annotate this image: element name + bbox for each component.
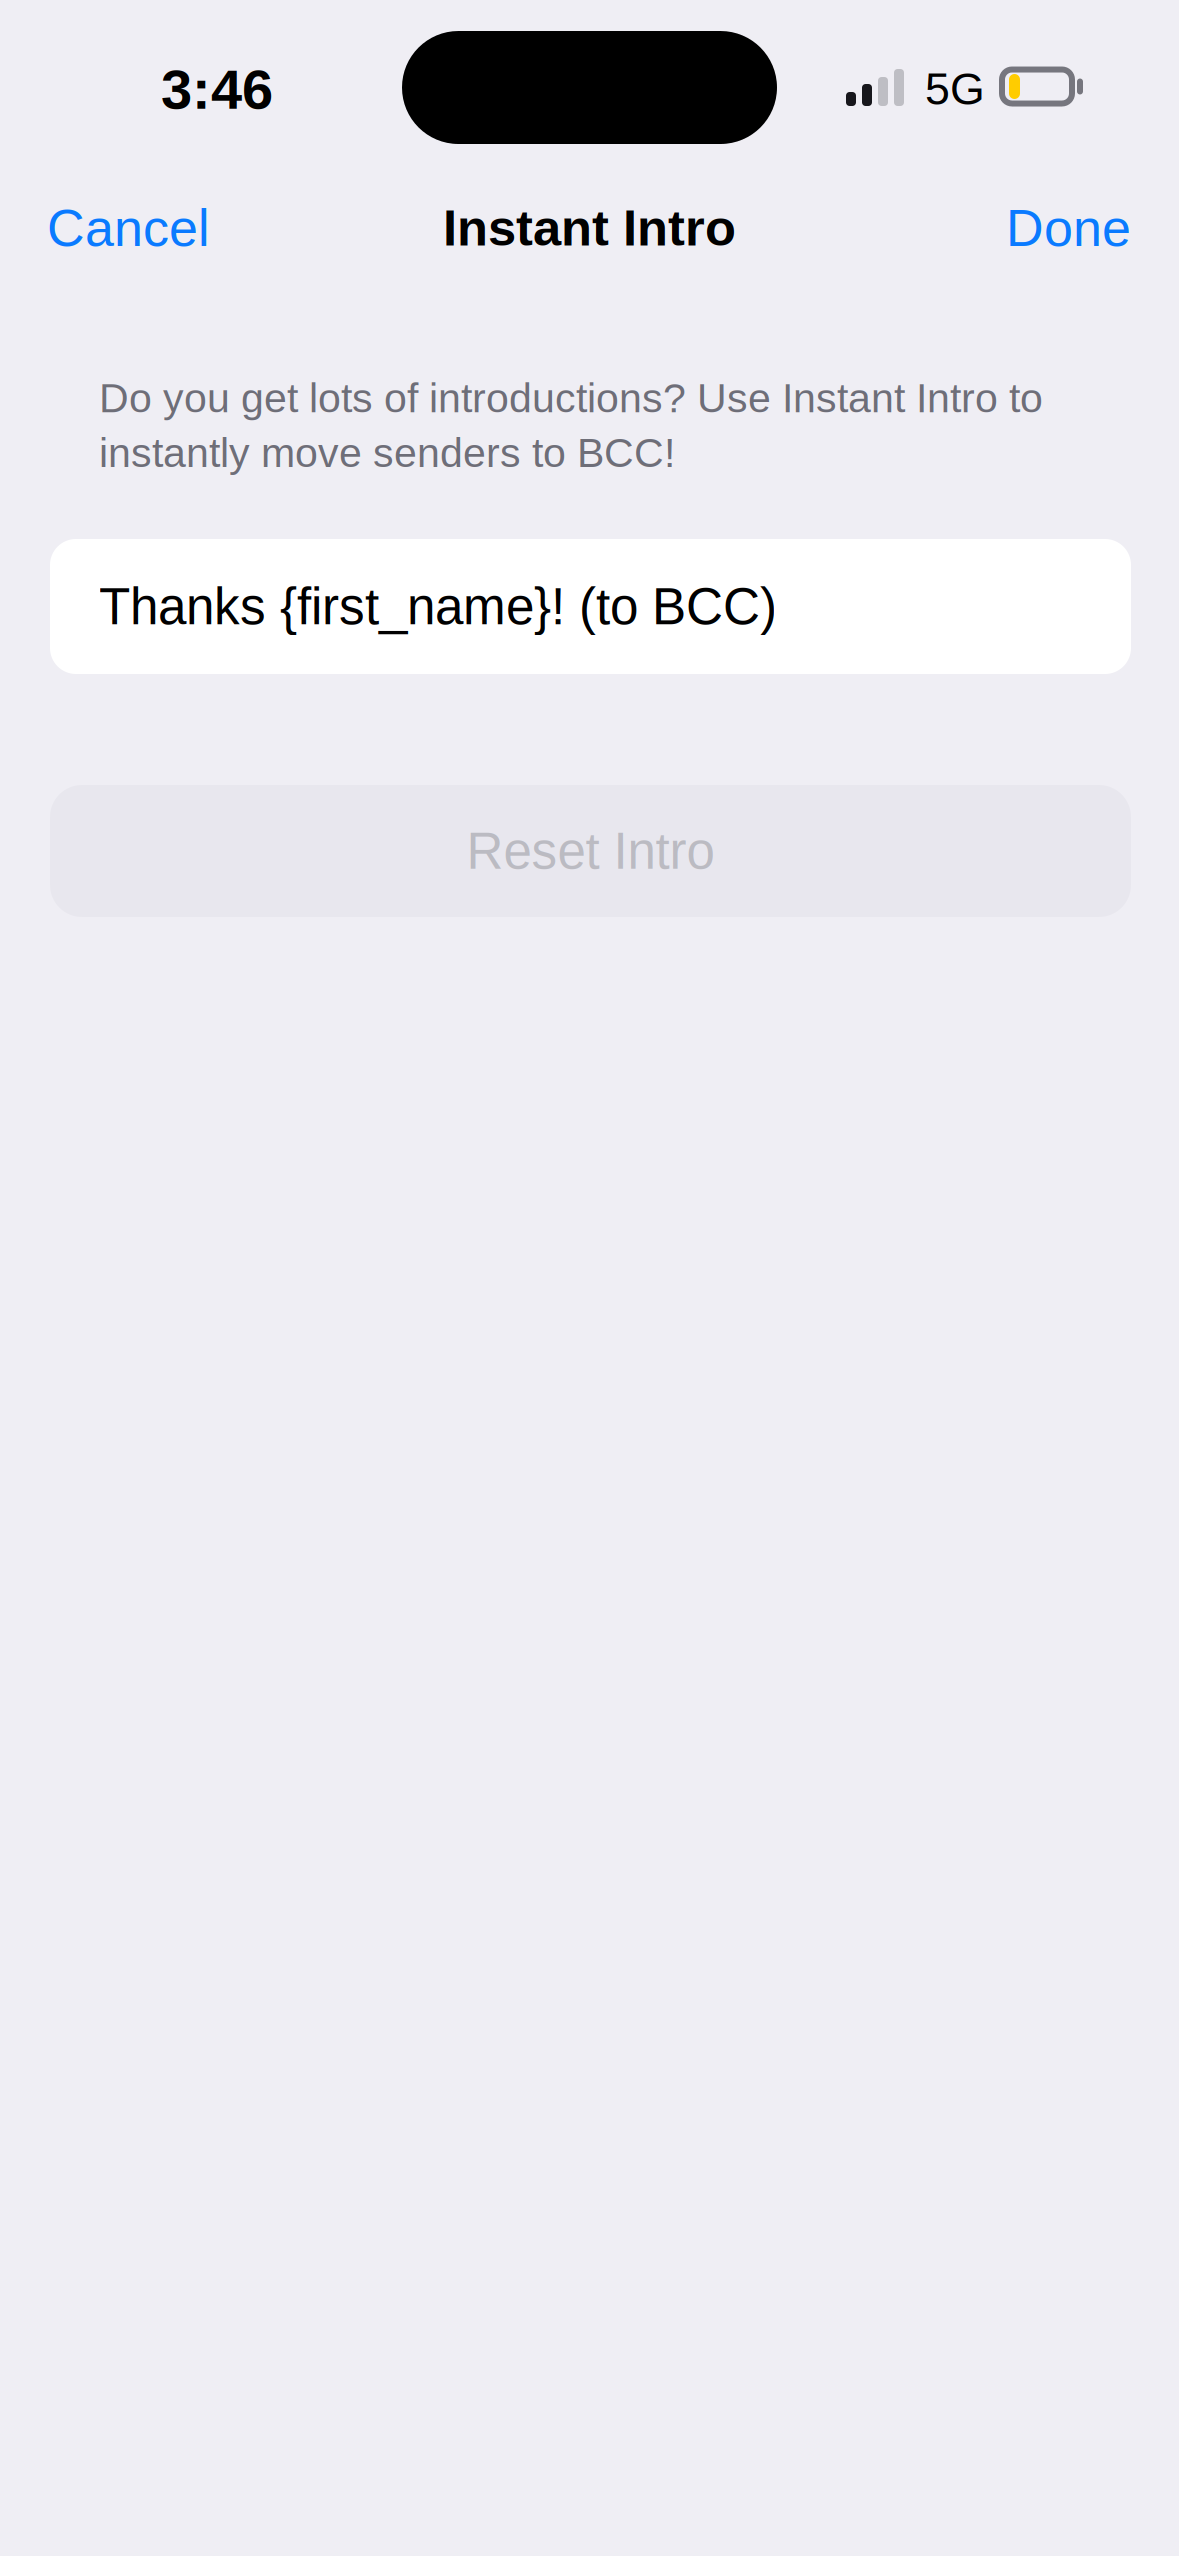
staticText: 5G: [925, 64, 985, 114]
button[interactable]: Cancel: [29, 180, 228, 276]
staticText: Done: [1006, 199, 1131, 257]
staticText: Instant Intro: [443, 200, 736, 256]
button[interactable]: Reset Intro: [50, 785, 1131, 917]
staticText: 3:46: [161, 58, 273, 121]
staticText: Thanks {first_name}! (to BCC): [99, 578, 777, 635]
button[interactable]: Done: [988, 180, 1149, 276]
staticText: Reset Intro: [466, 822, 714, 880]
staticText: Do you get lots of introductions? Use In…: [99, 375, 1043, 476]
button[interactable]: Thanks {first_name}! (to BCC): [50, 539, 1131, 674]
staticText: Cancel: [47, 199, 210, 257]
